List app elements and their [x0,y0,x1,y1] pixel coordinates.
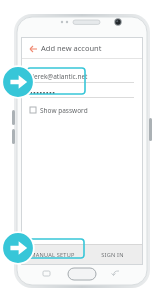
button[interactable]: Back [27,43,38,54]
staticText: SIGN IN [101,251,124,259]
button[interactable]: Show password [30,104,134,116]
button[interactable]: Enter credentials step [1,65,35,99]
staticText: Add new account [41,43,102,53]
staticText: derek@atlantic.net [30,72,88,81]
staticText: MANUAL SETUP [30,251,75,259]
button[interactable]: SIGN IN [82,245,142,264]
button[interactable] [30,86,134,98]
staticText: Show password [40,106,88,115]
button[interactable]: MANUAL SETUP [22,245,82,264]
button[interactable]: Manual setup step [1,231,35,265]
button[interactable]: derek@atlantic.net [30,70,134,83]
